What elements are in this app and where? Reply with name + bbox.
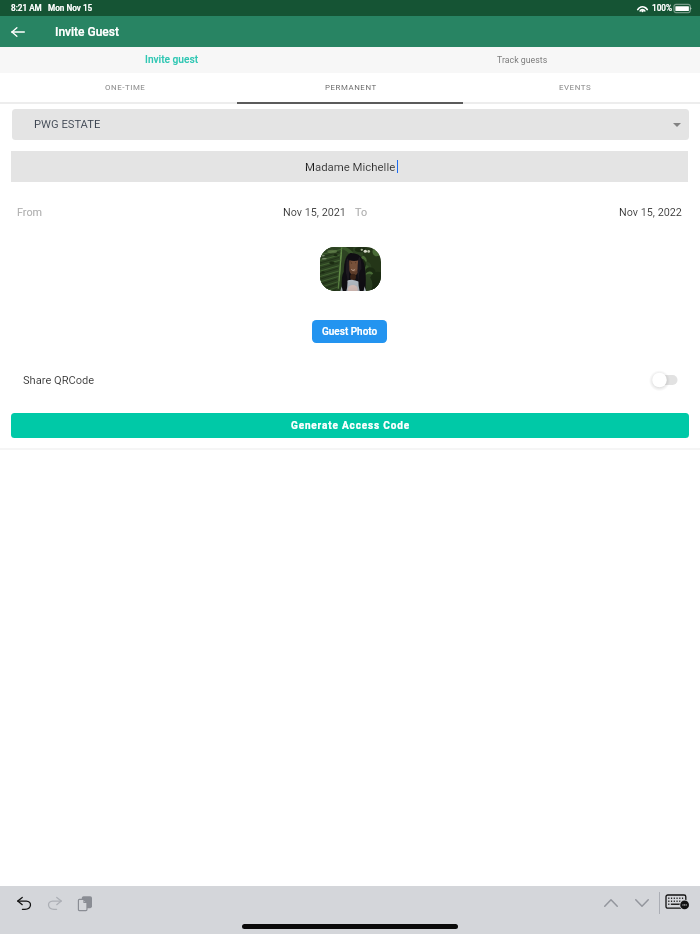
staticText: From: [17, 206, 43, 219]
button[interactable]: Share QRCode toggle: [644, 369, 678, 391]
button[interactable]: Guest photo: [320, 247, 381, 291]
staticText: Invite guest: [145, 54, 199, 66]
button[interactable]: Back: [6, 20, 29, 43]
button[interactable]: ONE-TIME: [12, 73, 238, 102]
staticText: Mon Nov 15: [48, 3, 93, 13]
staticText: Nov 15, 2021: [283, 206, 346, 219]
button[interactable]: Generate Access Code: [11, 413, 689, 438]
staticText: ONE-TIME: [105, 83, 146, 92]
button[interactable]: Madame Michelle: [11, 151, 688, 182]
button[interactable]: Redo: [43, 892, 65, 914]
staticText: EVENTS: [559, 83, 592, 92]
button[interactable]: Track guests: [350, 47, 700, 73]
staticText: Track guests: [497, 55, 548, 65]
button[interactable]: Keyboard: [666, 890, 690, 914]
button[interactable]: Share QRCode: [23, 368, 95, 392]
button[interactable]: Previous: [600, 892, 622, 914]
button[interactable]: PWG ESTATE: [12, 109, 689, 140]
staticText: Share QRCode: [23, 374, 95, 387]
staticText: 100%: [652, 3, 672, 13]
staticText: PERMANENT: [325, 83, 377, 92]
staticText: Nov 15, 2022: [619, 206, 682, 219]
staticText: 8:21 AM: [11, 3, 42, 13]
staticText: To: [355, 206, 368, 219]
staticText: Generate Access Code: [291, 420, 410, 432]
button[interactable]: PERMANENT: [238, 73, 463, 102]
button[interactable]: Paste: [74, 892, 96, 914]
button[interactable]: EVENTS: [463, 73, 688, 102]
button[interactable]: Next: [631, 892, 653, 914]
button[interactable]: Guest Photo: [312, 320, 387, 343]
staticText: Invite Guest: [55, 25, 119, 39]
button[interactable]: Invite guest: [0, 47, 350, 73]
staticText: Madame Michelle: [305, 160, 396, 173]
button[interactable]: Undo: [13, 892, 35, 914]
staticText: Guest Photo: [322, 326, 378, 338]
staticText: PWG ESTATE: [34, 118, 101, 131]
